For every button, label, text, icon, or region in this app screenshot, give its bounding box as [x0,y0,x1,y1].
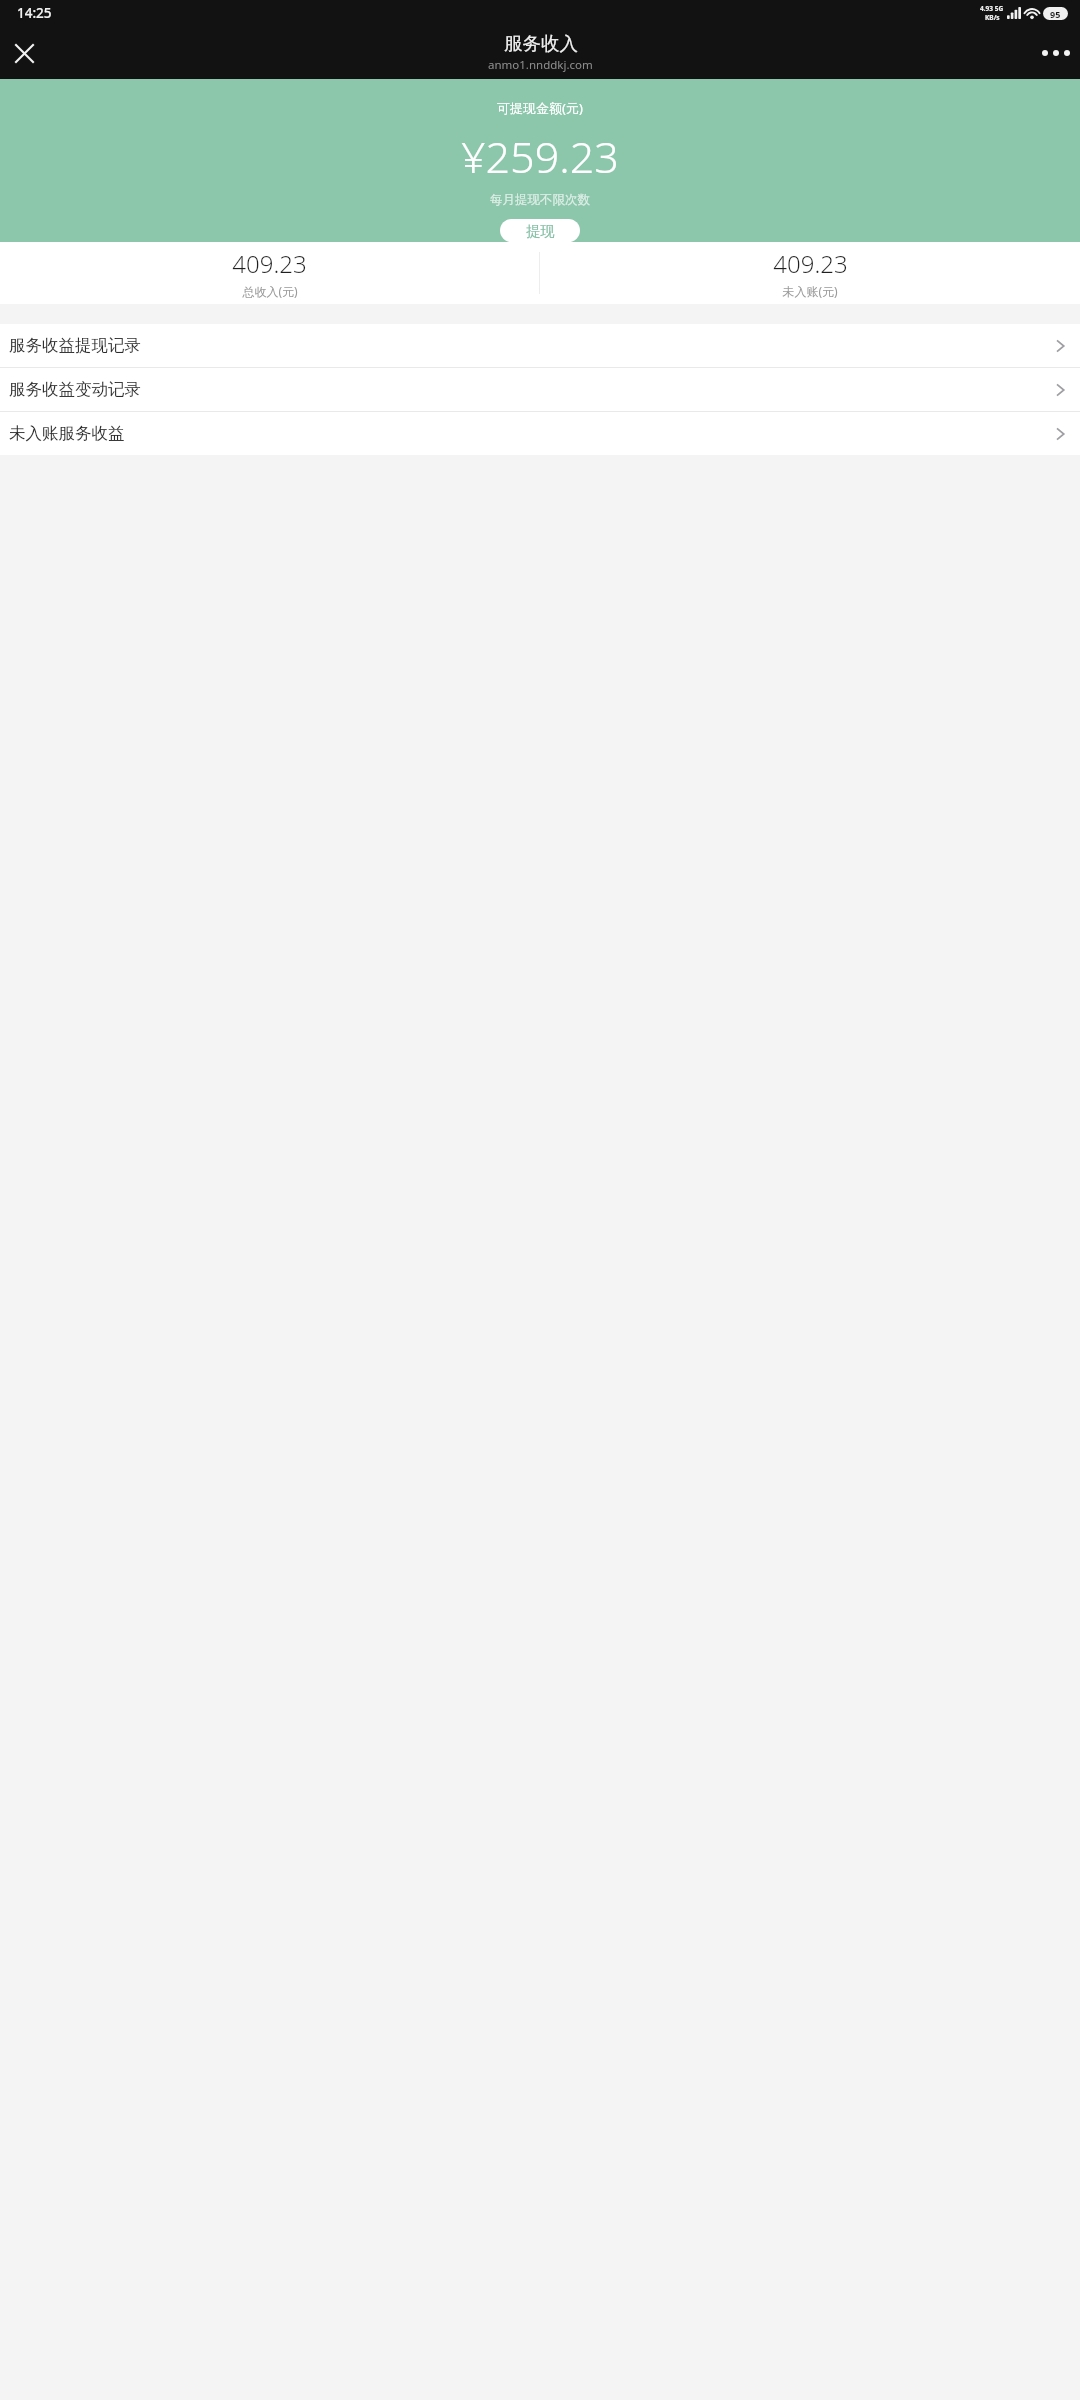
staticText: 未入账服务收益 [9,423,1055,444]
staticText: 95 [1050,8,1061,20]
staticText: 每月提现不限次数 [490,192,590,208]
staticText: 未入账(元) [782,283,838,299]
staticText: ¥259.23 [461,127,619,186]
staticText: 服务收益变动记录 [9,379,1055,400]
staticText: 总收入(元) [242,283,298,299]
staticText: 409.23 [232,247,307,280]
button[interactable]: 409.23 [0,247,539,299]
staticText: 14:25 [17,4,52,22]
staticText: anmo1.nnddkj.com [488,57,593,73]
staticText: 服务收益提现记录 [9,335,1055,356]
button[interactable]: 409.23 [540,247,1080,299]
button[interactable]: 提现 [500,219,580,242]
button[interactable]: More options [1032,29,1080,77]
staticText: 服务收入 [504,32,578,55]
staticText: 409.23 [773,247,848,280]
staticText: 提现 [526,222,555,240]
staticText: 可提现金额(元) [497,99,583,117]
staticText: KB/s [985,13,1000,22]
button[interactable]: Close [0,29,48,77]
button[interactable]: 服务收益提现记录 [0,324,1080,367]
button[interactable]: 服务收益变动记录 [0,368,1080,411]
button[interactable]: 未入账服务收益 [0,412,1080,455]
staticText: 4.93 5G [980,4,1004,13]
